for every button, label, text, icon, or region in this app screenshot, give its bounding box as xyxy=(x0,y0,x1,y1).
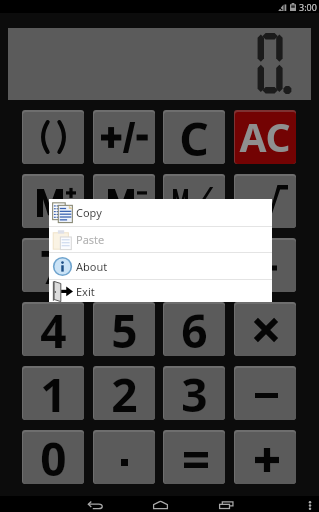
staticText: 3:00 xyxy=(299,1,317,13)
button[interactable]: 8 xyxy=(93,238,155,292)
staticText: 7 xyxy=(40,238,67,289)
staticText: 8 xyxy=(111,238,138,289)
button[interactable]: Memory plus xyxy=(22,174,84,228)
staticText: Paste xyxy=(76,232,105,247)
staticText: About xyxy=(76,259,108,274)
button[interactable]: Plus xyxy=(234,430,296,484)
staticText: 0 xyxy=(40,430,67,481)
button[interactable]: C xyxy=(163,110,225,164)
button[interactable]: Decimal point xyxy=(93,430,155,484)
staticText: AC xyxy=(239,110,291,163)
staticText: C xyxy=(179,110,209,161)
staticText: 2 xyxy=(111,366,138,417)
button[interactable]: Multiply xyxy=(234,302,296,356)
button[interactable]: 0 xyxy=(22,430,84,484)
button[interactable]: About xyxy=(49,253,272,279)
button[interactable]: More options xyxy=(300,496,319,512)
button[interactable]: 2 xyxy=(93,366,155,420)
button[interactable]: 3 xyxy=(163,366,225,420)
button[interactable]: Square root xyxy=(234,174,296,228)
button[interactable]: Copy xyxy=(49,199,272,226)
button[interactable]: Home xyxy=(140,496,180,512)
button[interactable]: Divide xyxy=(234,238,296,292)
button[interactable]: 1 xyxy=(22,366,84,420)
button[interactable]: 9 xyxy=(163,238,225,292)
button[interactable]: 7 xyxy=(22,238,84,292)
button[interactable]: 4 xyxy=(22,302,84,356)
button[interactable]: Exit xyxy=(49,280,272,302)
button[interactable]: Plus minus xyxy=(93,110,155,164)
button[interactable]: Equals xyxy=(163,430,225,484)
button[interactable]: Paste xyxy=(49,227,272,252)
button[interactable]: 5 xyxy=(93,302,155,356)
staticText: 6 xyxy=(181,302,208,353)
button[interactable]: Parentheses xyxy=(22,110,84,164)
staticText: Exit xyxy=(76,284,95,299)
button[interactable]: Recents xyxy=(206,496,246,512)
staticText: 3 xyxy=(181,366,208,417)
staticText: 9 xyxy=(181,238,208,289)
button[interactable]: Back xyxy=(75,496,115,512)
button[interactable]: All clear xyxy=(234,110,296,164)
button[interactable]: Minus xyxy=(234,366,296,420)
button[interactable]: Memory minus xyxy=(93,174,155,228)
button[interactable]: Memory recall xyxy=(163,174,225,228)
button[interactable]: 6 xyxy=(163,302,225,356)
staticText: 4 xyxy=(40,302,67,353)
staticText: 1 xyxy=(40,366,67,417)
staticText: 5 xyxy=(111,302,138,353)
staticText: Copy xyxy=(76,205,102,220)
